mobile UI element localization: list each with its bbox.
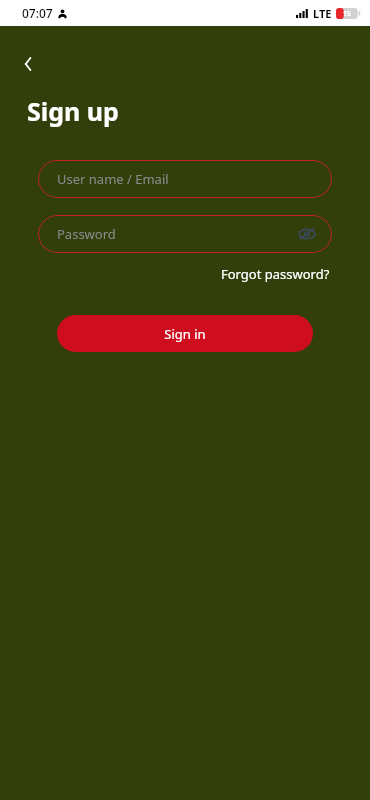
- button[interactable]: Forgot password?: [219, 263, 332, 285]
- button[interactable]: Back: [10, 46, 46, 82]
- button[interactable]: Show password: [294, 221, 320, 247]
- button[interactable]: Password: [38, 215, 332, 253]
- button[interactable]: Sign in: [57, 315, 313, 352]
- staticText: 15: [343, 9, 352, 19]
- staticText: 07:07: [22, 5, 53, 21]
- staticText: User name / Email: [57, 170, 169, 188]
- button[interactable]: User name / Email: [38, 160, 332, 198]
- staticText: LTE: [313, 6, 332, 21]
- staticText: Password: [57, 225, 116, 243]
- staticText: Sign up: [27, 94, 119, 128]
- staticText: Sign in: [164, 325, 206, 343]
